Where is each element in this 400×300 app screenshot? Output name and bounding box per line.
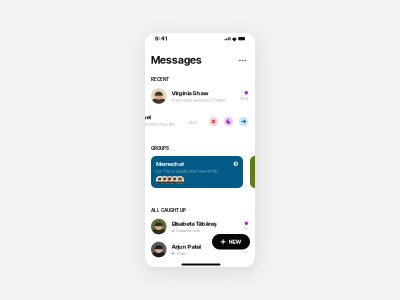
button[interactable]: Forward bbox=[237, 115, 250, 128]
button[interactable]: More options bbox=[236, 55, 249, 66]
staticText: Virginia Shaw bbox=[171, 89, 208, 97]
staticText: 16:04 bbox=[240, 96, 248, 101]
staticText: 9:41 bbox=[155, 35, 167, 42]
staticText: NEW bbox=[228, 238, 241, 245]
staticText: 2 attachments bbox=[176, 228, 200, 233]
staticText: Messages bbox=[151, 53, 202, 66]
button[interactable]: Sam Michel bbox=[100, 112, 198, 128]
staticText: RECENT bbox=[151, 76, 169, 82]
staticText: That sounds awesome! Thanks bbox=[171, 97, 225, 102]
staticText: 8 bbox=[235, 161, 237, 166]
button[interactable]: Delete bbox=[207, 115, 220, 128]
staticText: GROUPS bbox=[151, 145, 169, 151]
staticText: 2 hr bbox=[242, 250, 248, 254]
staticText: 10:23 bbox=[189, 120, 197, 125]
staticText: Sam Michel bbox=[120, 113, 150, 121]
staticText: 7hr bbox=[243, 227, 248, 231]
button[interactable]: Arjun Patel bbox=[151, 241, 249, 257]
staticText: Memechat bbox=[156, 160, 184, 167]
staticText: ALL CAUGHT UP bbox=[151, 207, 186, 213]
button[interactable]: Memechat bbox=[151, 156, 243, 188]
staticText: Arjun Patel bbox=[171, 243, 200, 250]
button[interactable]: Virginia Shaw bbox=[151, 88, 249, 104]
button[interactable]: Mute bbox=[222, 115, 235, 128]
staticText: It would be a lot cooler if you did. bbox=[120, 121, 174, 126]
staticText: Elisabeta Tăbăraş bbox=[171, 220, 216, 227]
staticText: Lia: This is exactly how I saw it! HA! bbox=[156, 168, 218, 173]
button[interactable]: NEW bbox=[212, 234, 250, 249]
staticText: Video bbox=[176, 251, 186, 256]
button[interactable]: Elisabeta Tăbăraş bbox=[151, 218, 249, 234]
